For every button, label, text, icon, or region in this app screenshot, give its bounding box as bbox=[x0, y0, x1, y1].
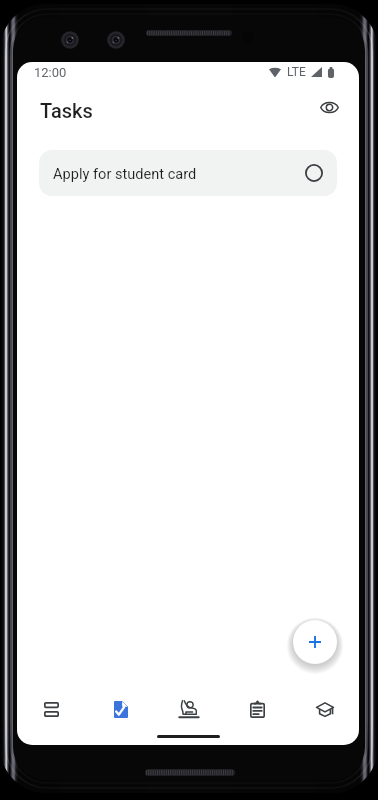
button[interactable]: Create new task bbox=[293, 620, 337, 664]
staticText: Apply for student card bbox=[53, 165, 197, 182]
staticText: LTE bbox=[287, 65, 306, 79]
button[interactable]: Tasks bbox=[86, 690, 155, 728]
staticText: 12:00 bbox=[34, 65, 67, 80]
button[interactable]: Assignments bbox=[223, 690, 291, 728]
button[interactable]: Classroom bbox=[155, 690, 223, 728]
button[interactable]: Show or hide completed tasks bbox=[309, 87, 349, 127]
button[interactable]: Dashboard bbox=[17, 690, 86, 728]
button[interactable]: Apply for student card bbox=[39, 150, 337, 196]
staticText: Tasks bbox=[40, 99, 93, 122]
button[interactable]: Courses bbox=[291, 690, 359, 728]
